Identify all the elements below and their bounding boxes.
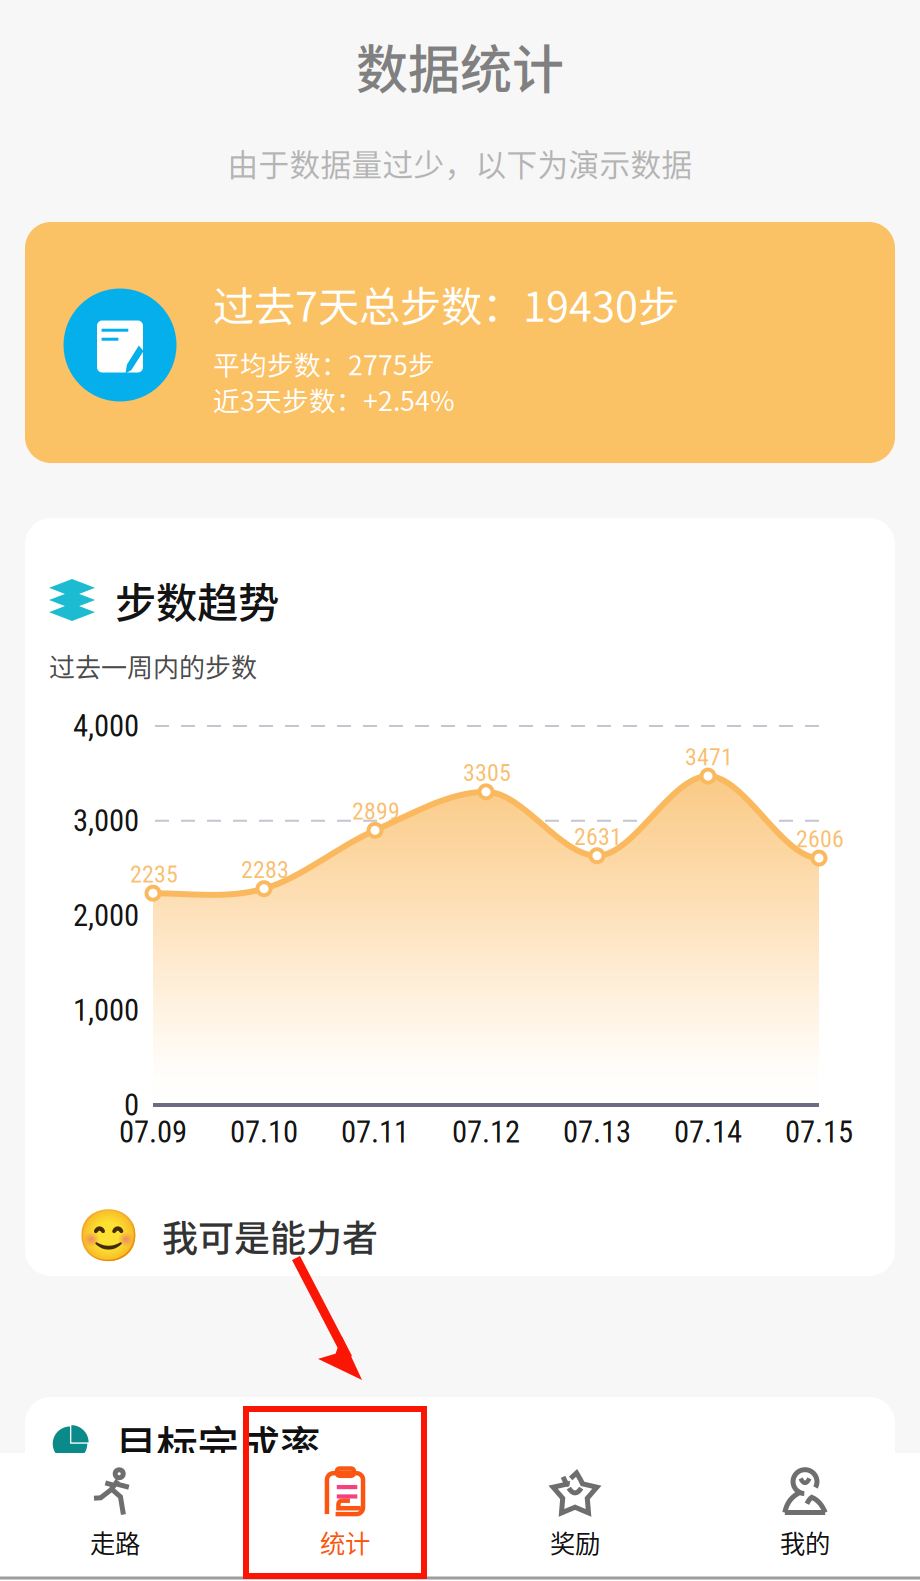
staticText: 07.14 [674, 1114, 742, 1150]
staticText: 统计 [320, 1524, 370, 1560]
staticText: 3305 [463, 759, 511, 787]
staticText: 07.10 [230, 1114, 298, 1150]
staticText: 07.11 [341, 1114, 409, 1150]
staticText: 4,000 [73, 708, 139, 744]
staticText: 07.15 [785, 1114, 853, 1150]
staticText: 过去一周内的步数 [49, 647, 257, 685]
staticText: 07.13 [563, 1114, 631, 1150]
staticText: 我可是能力者 [162, 1210, 378, 1262]
button[interactable]: 过去7天总步数：19430步 [25, 222, 895, 463]
button[interactable]: 走路 [0, 1453, 230, 1581]
staticText: 2606 [796, 825, 844, 853]
staticText: 1,000 [73, 992, 139, 1028]
staticText: 3471 [685, 743, 733, 771]
staticText: 目标完成率 [115, 1413, 320, 1473]
staticText: 数据统计 [356, 28, 564, 104]
staticText: 过去7天总步数：19430步 [213, 274, 679, 334]
staticText: 😊 [77, 1206, 140, 1266]
staticText: 07.09 [119, 1114, 187, 1150]
staticText: 2283 [241, 856, 289, 884]
staticText: 平均步数：2775步 [213, 344, 435, 383]
button[interactable]: 奖励 [460, 1453, 690, 1581]
staticText: 07.12 [452, 1114, 520, 1150]
button[interactable]: 统计 [230, 1453, 460, 1581]
button[interactable]: 我的 [690, 1453, 920, 1581]
staticText: 2899 [352, 797, 400, 825]
staticText: 步数趋势 [115, 570, 279, 630]
staticText: 走路 [90, 1524, 140, 1560]
staticText: 2631 [574, 823, 622, 851]
staticText: 3,000 [73, 803, 139, 839]
staticText: 近3天步数：+2.54% [213, 380, 455, 419]
staticText: 由于数据量过少，以下为演示数据 [227, 141, 692, 185]
staticText: 2,000 [73, 897, 139, 933]
staticText: 2235 [130, 860, 178, 888]
staticText: 奖励 [550, 1524, 600, 1560]
staticText: 0 [124, 1087, 139, 1123]
staticText: 我的 [780, 1524, 830, 1560]
